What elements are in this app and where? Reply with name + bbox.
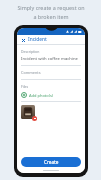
button[interactable]: Attached photo bbox=[21, 105, 35, 119]
button[interactable]: Create bbox=[21, 157, 81, 167]
button[interactable]: Close bbox=[20, 37, 26, 43]
staticText: Description bbox=[21, 49, 40, 54]
staticText: Incident bbox=[28, 36, 47, 43]
staticText: Incident with coffee machine bbox=[21, 56, 78, 62]
staticText: Create bbox=[44, 159, 59, 165]
staticText: Add photo(s) bbox=[29, 93, 54, 98]
staticText: Simply create a request on bbox=[17, 4, 85, 11]
staticText: a broken item bbox=[33, 13, 69, 20]
staticText: Comments bbox=[21, 70, 41, 75]
button[interactable]: Remove photo bbox=[32, 116, 37, 121]
button[interactable]: Add photo(s) bbox=[21, 92, 81, 98]
staticText: Files bbox=[21, 84, 29, 89]
